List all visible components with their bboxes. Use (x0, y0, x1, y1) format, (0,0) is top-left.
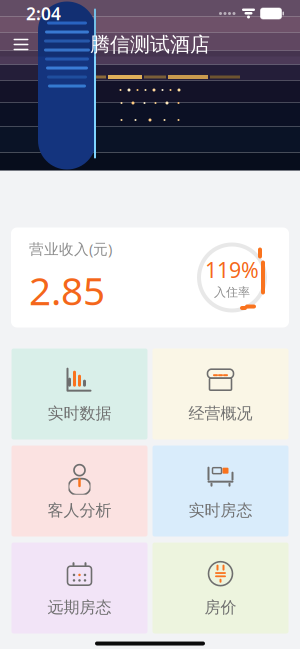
staticText: 实时数据 (47, 404, 111, 423)
staticText: 119% (205, 255, 259, 284)
staticText: 2:04 (26, 2, 61, 25)
staticText: 经营概况 (188, 404, 252, 423)
staticText: 客人分析 (47, 501, 111, 520)
staticText: 远期房态 (47, 598, 111, 617)
button[interactable]: 客人分析 (11, 445, 147, 536)
button[interactable]: 实时房态 (152, 445, 288, 536)
button[interactable]: Menu (6, 30, 36, 58)
staticText: 房价 (204, 598, 236, 617)
button[interactable]: 经营概况 (152, 348, 288, 439)
staticText: 2.85 (29, 265, 105, 316)
staticText: 营业收入(元) (29, 239, 112, 259)
staticText: 腾信测试酒店 (90, 32, 210, 57)
button[interactable]: 实时数据 (11, 348, 147, 439)
staticText: 实时房态 (188, 501, 252, 520)
button[interactable]: 房价 (152, 542, 288, 633)
button[interactable]: 远期房态 (11, 542, 147, 633)
staticText: 入住率 (214, 285, 250, 299)
